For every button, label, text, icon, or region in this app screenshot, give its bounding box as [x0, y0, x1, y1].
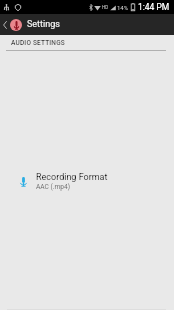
- button[interactable]: Back: [0, 14, 10, 35]
- staticText: Settings: [27, 19, 60, 30]
- staticText: HD: [102, 5, 109, 10]
- staticText: 1:44 PM: [138, 2, 170, 12]
- staticText: AUDIO SETTINGS: [11, 39, 65, 47]
- staticText: Recording Format: [36, 172, 108, 183]
- button[interactable]: Recording Format: [0, 52, 174, 309]
- staticText: AAC (.mp4): [36, 183, 70, 191]
- staticText: 14%: [117, 4, 129, 11]
